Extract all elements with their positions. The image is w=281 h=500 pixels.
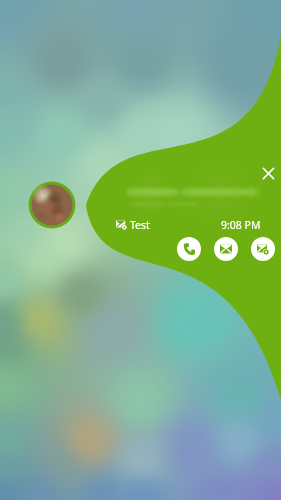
staticText: Test — [130, 218, 150, 232]
button[interactable]: Message — [214, 237, 238, 261]
staticText: 9:08 PM — [221, 218, 261, 232]
button[interactable]: Contact photo — [28, 181, 76, 229]
button[interactable]: Close — [256, 161, 280, 185]
button[interactable]: Email — [251, 237, 275, 261]
button[interactable]: Call — [177, 237, 201, 261]
